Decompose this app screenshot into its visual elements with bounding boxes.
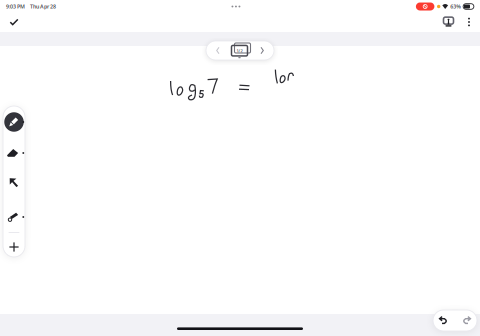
- button[interactable]: Eraser tool: [3, 138, 25, 168]
- button[interactable]: Done: [4, 13, 24, 31]
- button[interactable]: Pen tool: [3, 106, 25, 138]
- staticText: 63%: [450, 3, 461, 10]
- button[interactable]: Add tool: [3, 237, 25, 257]
- button[interactable]: More options: [462, 13, 475, 31]
- button[interactable]: Next page: [255, 41, 269, 60]
- button[interactable]: Pages: [229, 42, 251, 59]
- button[interactable]: Select tool: [3, 168, 25, 197]
- button[interactable]: Lasso tool: [3, 197, 25, 237]
- button[interactable]: Redo: [458, 310, 474, 331]
- button[interactable]: Previous page: [211, 41, 225, 60]
- staticText: Thu Apr 28: [30, 3, 56, 10]
- button[interactable]: Undo: [435, 310, 451, 331]
- staticText: 1/2: [236, 48, 242, 53]
- staticText: 9:03 PM: [6, 3, 25, 10]
- button[interactable]: Cast screen: [440, 13, 456, 31]
